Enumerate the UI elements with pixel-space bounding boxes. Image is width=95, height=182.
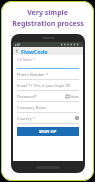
staticText: Company Name (17, 105, 47, 110)
staticText: FlowCode (21, 48, 48, 55)
staticText: Phone Number * (17, 72, 49, 77)
staticText: Email * ( This is your login ID) (17, 83, 71, 88)
staticText: Full Name * (17, 58, 35, 62)
button[interactable]: Country * (17, 113, 79, 124)
button[interactable]: Company Name (17, 102, 79, 113)
staticText: Very simple (27, 8, 68, 18)
staticText: SIGN UP (39, 129, 57, 135)
button[interactable]: Password* (17, 91, 79, 102)
button[interactable]: Phone Number * (17, 69, 79, 80)
staticText: Password* (17, 94, 37, 99)
button[interactable]: Full Name * (17, 57, 79, 69)
button[interactable]: Back (13, 47, 21, 55)
staticText: Registration process (12, 19, 84, 29)
button[interactable]: Email * ( This is your login ID) (17, 80, 79, 91)
button[interactable]: SIGN UP (17, 127, 79, 136)
staticText: Country * (17, 116, 35, 121)
staticText: Show (70, 94, 79, 99)
